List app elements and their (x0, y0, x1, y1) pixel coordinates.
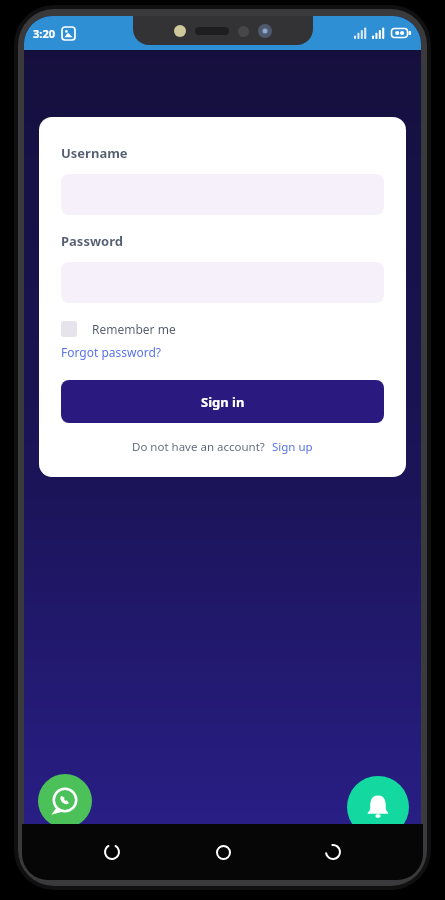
button[interactable]: Back (313, 832, 353, 872)
staticText: Sign in (201, 393, 245, 411)
staticText: Do not have an account? (132, 439, 265, 455)
staticText: GetButton (51, 831, 109, 846)
button[interactable]: Forgot password? (61, 344, 162, 360)
button[interactable]: Notifications (347, 776, 409, 838)
button[interactable]: Chat on WhatsApp (38, 774, 92, 828)
button[interactable]: Remember me (61, 321, 176, 337)
button[interactable]: Home (203, 832, 243, 872)
staticText: Forgot password? (61, 344, 162, 360)
button[interactable]: Recent apps (92, 832, 132, 872)
staticText: 3:20 (33, 26, 55, 41)
staticText: Remember me (92, 321, 176, 337)
staticText: Username (61, 144, 128, 162)
staticText: Sign up (272, 439, 313, 455)
button[interactable]: Sign in (61, 380, 384, 423)
button[interactable]: Sign up (272, 439, 313, 455)
staticText: Password (61, 232, 123, 250)
